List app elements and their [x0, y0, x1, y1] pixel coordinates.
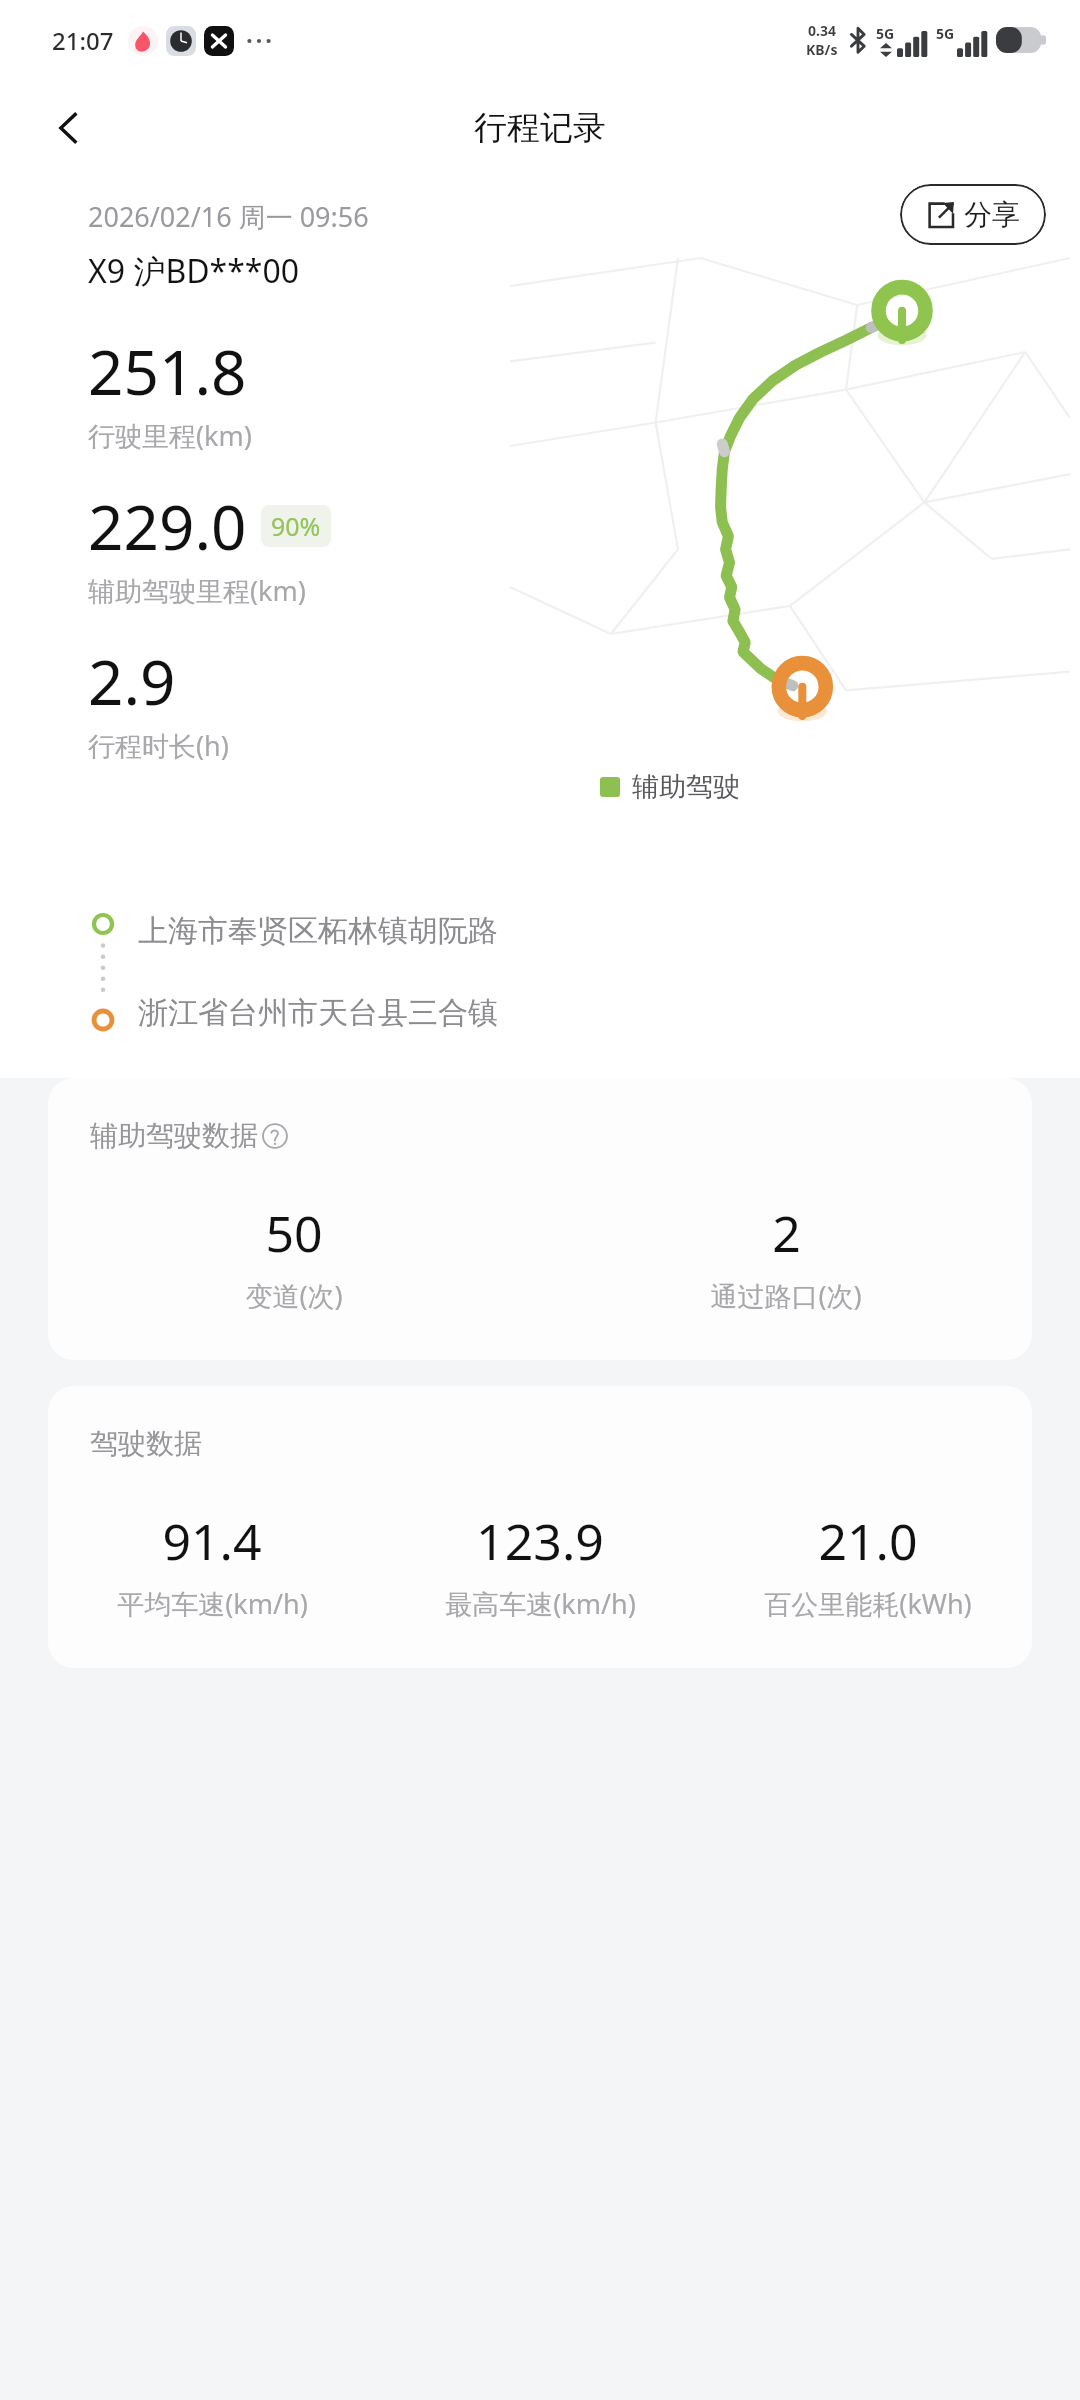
staticText: 91.4 [162, 1507, 262, 1575]
staticText: 行程记录 [474, 107, 606, 149]
staticText: 辅助驾驶 [632, 770, 740, 804]
staticText: 2.9 [88, 639, 176, 723]
staticText: 浙江省台州市天台县三合镇 [138, 994, 498, 1032]
staticText: 辅助驾驶里程(km) [88, 572, 306, 609]
button[interactable]: 驾驶数据 [48, 1386, 1032, 1668]
button[interactable]: 辅助驾驶数据 [48, 1078, 1032, 1360]
staticText: 251.8 [88, 329, 247, 413]
staticText: 分享 [964, 197, 1020, 232]
staticText: 5G [876, 24, 895, 43]
staticText: 驾驶数据 [90, 1426, 202, 1461]
staticText: X9 沪BD***00 [88, 249, 300, 293]
staticText: 行程时长(h) [88, 727, 229, 764]
staticText: 21.0 [818, 1507, 918, 1575]
staticText: 行驶里程(km) [88, 417, 252, 454]
staticText: 5G [936, 24, 955, 43]
staticText: 辅助驾驶数据 [90, 1118, 258, 1153]
staticText: KB/s [806, 40, 838, 59]
staticText: 2026/02/16 周一 09:56 [88, 198, 369, 235]
staticText: 变道(次) [245, 1277, 343, 1314]
staticText: 21:07 [52, 24, 114, 57]
staticText: 123.9 [476, 1507, 604, 1575]
staticText: 2 [772, 1199, 801, 1267]
staticText: 百公里能耗(kWh) [764, 1585, 972, 1622]
button[interactable]: Back [38, 97, 100, 159]
staticText: 最高车速(km/h) [445, 1585, 636, 1622]
staticText: 90% [271, 509, 321, 543]
button[interactable]: 分享 [900, 184, 1046, 245]
staticText: 上海市奉贤区柘林镇胡阮路 [138, 912, 498, 950]
staticText: 50 [265, 1199, 323, 1267]
staticText: 0.34 [808, 21, 836, 40]
staticText: 通过路口(次) [710, 1277, 862, 1314]
staticText: 平均车速(km/h) [117, 1585, 308, 1622]
staticText: 229.0 [88, 484, 247, 568]
